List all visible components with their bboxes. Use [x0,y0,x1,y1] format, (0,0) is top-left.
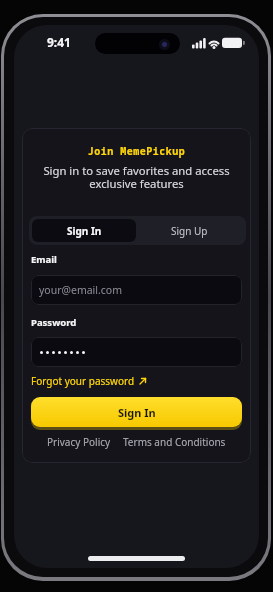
staticText: Sign In [118,405,156,420]
button[interactable]: Forgot your password [31,374,147,388]
staticText: Sign In [67,224,102,238]
staticText: Password [31,316,77,329]
staticText: Email [31,253,57,266]
button[interactable]: Privacy Policy [47,435,111,449]
button[interactable] [31,337,242,367]
button[interactable]: Sign In [32,219,136,242]
staticText: Sign Up [171,224,208,238]
staticText: Forgot your password [31,374,135,388]
staticText: 9:41 [47,34,71,50]
button[interactable]: your@email.com [31,275,242,305]
staticText: Sign in to save favorites and access exc… [22,163,251,191]
button[interactable]: Sign Up [136,219,243,242]
button[interactable]: Sign In [31,397,242,427]
staticText: your@email.com [39,283,123,297]
staticText: Join MemePickup [22,144,251,158]
button[interactable]: Terms and Conditions [123,435,226,449]
